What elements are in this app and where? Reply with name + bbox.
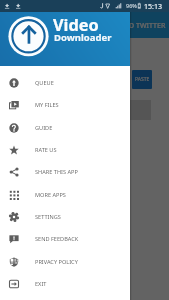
staticText: 96% — [126, 2, 137, 9]
button[interactable]: MORE APPS — [0, 184, 130, 206]
button[interactable]: SETTINGS — [0, 206, 130, 228]
staticText: PRIVACY POLICY — [35, 258, 78, 266]
staticText: SETTINGS — [35, 213, 61, 221]
button[interactable]: QUEUE — [0, 72, 130, 94]
staticText: EXIT — [35, 280, 47, 288]
staticText: Downloader — [54, 31, 112, 44]
staticText: MY FILES — [35, 101, 59, 109]
button[interactable]: MY FILES — [0, 94, 130, 116]
button[interactable]: PRIVACY POLICY — [0, 251, 130, 273]
staticText: DOWNLOAD TWITTER — [93, 21, 166, 31]
button[interactable]: GUIDE — [0, 117, 130, 139]
button[interactable]: PASTE — [132, 70, 152, 89]
staticText: GUIDE — [35, 124, 53, 132]
staticText: MORE APPS — [35, 191, 66, 199]
staticText: RATE US — [35, 146, 57, 154]
button[interactable]: EXIT — [0, 273, 130, 295]
button[interactable]: RATE US — [0, 139, 130, 161]
staticText: Video — [53, 14, 99, 36]
button[interactable]: SEND FEEDBACK — [0, 228, 130, 250]
staticText: SEND FEEDBACK — [35, 235, 79, 243]
button[interactable]: SHARE THIS APP — [0, 161, 130, 183]
staticText: 15:13 — [144, 2, 162, 12]
staticText: QUEUE — [35, 79, 54, 87]
staticText: SHARE THIS APP — [35, 168, 78, 176]
staticText: PASTE — [135, 76, 150, 83]
